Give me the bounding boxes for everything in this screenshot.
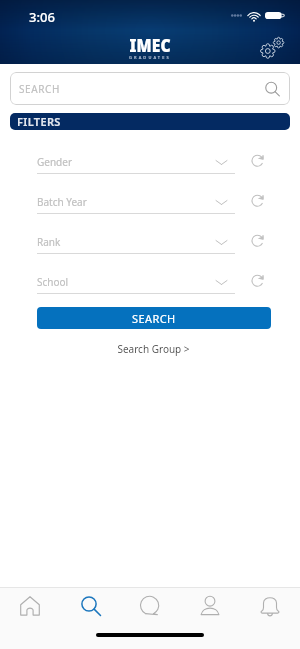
button[interactable]: Rank — [37, 230, 235, 254]
button[interactable]: Settings — [256, 33, 286, 63]
staticText: IMEC — [130, 33, 171, 57]
button[interactable]: Batch Year — [37, 190, 235, 214]
button[interactable]: SEARCH — [10, 72, 290, 105]
staticText: School — [37, 275, 216, 289]
button[interactable]: School — [37, 270, 235, 294]
staticText: Batch Year — [37, 195, 216, 209]
staticText: Gender — [37, 155, 216, 169]
button[interactable]: Reset Rank — [247, 230, 268, 251]
button[interactable]: Profile — [180, 588, 240, 624]
staticText: 3:06 — [29, 8, 55, 26]
button[interactable]: FILTERS — [10, 113, 290, 130]
staticText: SEARCH — [19, 82, 60, 96]
button[interactable]: Search Group > — [114, 339, 193, 359]
staticText: FILTERS — [17, 114, 61, 129]
button[interactable]: Home — [0, 588, 60, 624]
staticText: SEARCH — [132, 311, 176, 326]
button[interactable]: Reset School — [247, 270, 268, 291]
button[interactable]: Messages — [120, 588, 180, 624]
staticText: Rank — [37, 235, 216, 249]
button[interactable]: Reset Gender — [247, 150, 268, 171]
button[interactable]: Notifications — [240, 588, 300, 624]
button[interactable]: Reset Batch Year — [247, 190, 268, 211]
button[interactable]: Gender — [37, 150, 235, 174]
button[interactable]: Search — [60, 588, 120, 624]
staticText: GRADUATES — [129, 55, 171, 60]
button[interactable]: SEARCH — [37, 307, 271, 329]
